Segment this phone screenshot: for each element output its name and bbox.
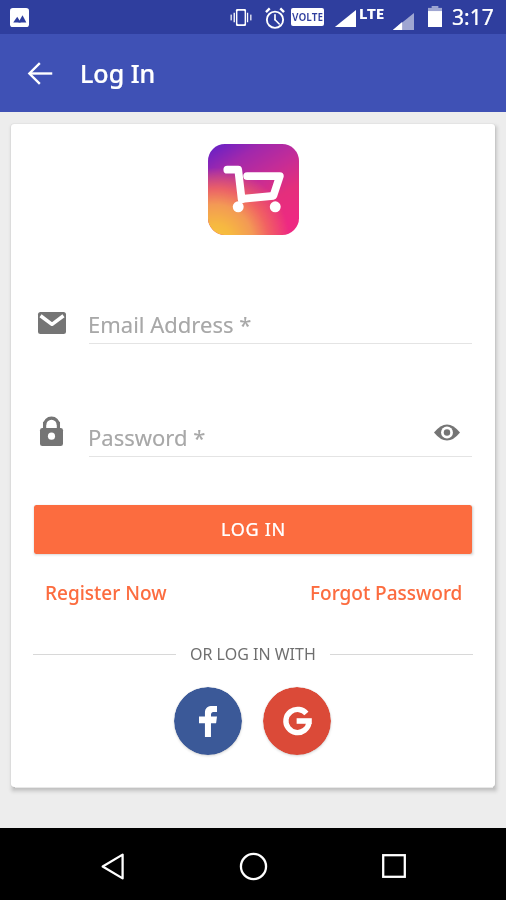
button[interactable]: LOG IN — [34, 505, 472, 554]
staticText: Email Address * — [88, 309, 252, 339]
button[interactable]: Log in with Facebook — [174, 687, 242, 755]
button[interactable]: Log in with Google — [263, 687, 331, 755]
staticText: Password * — [88, 422, 206, 452]
button[interactable]: Show password — [433, 418, 461, 446]
staticText: Log In — [80, 56, 156, 90]
button[interactable]: Forgot Password — [310, 576, 463, 610]
button[interactable]: Back — [12, 45, 68, 101]
staticText: OR LOG IN WITH — [190, 643, 316, 665]
button[interactable]: Email Address * — [88, 307, 388, 341]
button[interactable]: Back — [88, 841, 138, 891]
button[interactable]: Recent apps — [369, 841, 419, 891]
button[interactable]: Password * — [88, 420, 388, 454]
staticText: 3:17 — [452, 3, 494, 32]
button[interactable]: Register Now — [45, 576, 167, 610]
staticText: LTE — [359, 3, 385, 23]
staticText: VOLTE — [292, 10, 324, 24]
staticText: Register Now — [45, 580, 167, 606]
staticText: LOG IN — [221, 517, 286, 542]
button[interactable]: Home — [228, 841, 278, 891]
staticText: Forgot Password — [310, 580, 463, 606]
